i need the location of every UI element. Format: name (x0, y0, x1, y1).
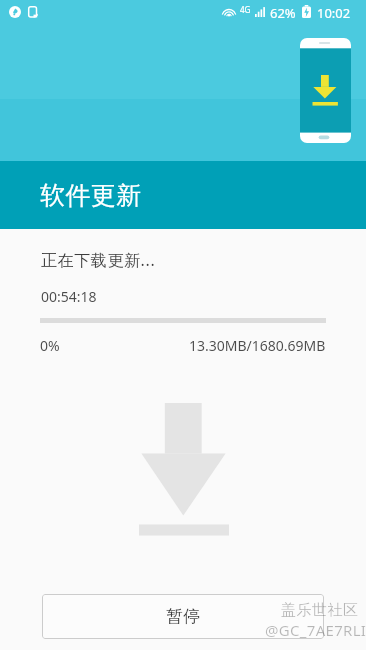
other: Notification (9, 6, 21, 18)
staticText: 正在下载更新... (41, 249, 156, 271)
staticText: 软件更新 (40, 180, 142, 211)
staticText: 10:02 (317, 4, 351, 22)
other: Screenshot (28, 6, 38, 18)
staticText: 盖乐世社区 (281, 601, 359, 620)
staticText: @GC_7AE7RLI (265, 620, 366, 640)
staticText: 13.30MB/1680.69MB (189, 336, 326, 355)
staticText: 0% (40, 336, 60, 355)
staticText: 4G (240, 4, 251, 15)
staticText: 暂停 (166, 606, 200, 627)
button[interactable]: 暂停 (42, 594, 324, 639)
staticText: 00:54:18 (41, 287, 97, 306)
staticText: 62% (270, 4, 296, 22)
